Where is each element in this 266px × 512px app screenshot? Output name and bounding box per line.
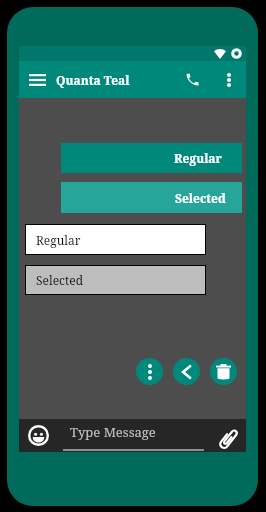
button[interactable]: More bbox=[136, 358, 163, 385]
staticText: Type Message bbox=[70, 423, 156, 441]
staticText: Selected bbox=[36, 272, 84, 288]
staticText: Regular bbox=[36, 232, 81, 248]
button[interactable]: Type Message bbox=[62, 419, 211, 452]
button[interactable]: Call bbox=[174, 61, 211, 98]
button[interactable]: Selected bbox=[26, 266, 205, 294]
staticText: Selected bbox=[175, 190, 226, 206]
button[interactable]: More options bbox=[211, 62, 246, 97]
button[interactable]: Attach bbox=[216, 426, 240, 450]
button[interactable]: Menu bbox=[19, 61, 56, 98]
staticText: Quanta Teal bbox=[56, 72, 130, 88]
staticText: Regular bbox=[174, 150, 222, 166]
button[interactable]: Selected bbox=[61, 182, 242, 213]
button[interactable]: Back bbox=[173, 358, 200, 385]
button[interactable]: Regular bbox=[26, 225, 205, 254]
button[interactable]: Regular bbox=[61, 143, 242, 173]
button[interactable]: Emoji bbox=[28, 425, 49, 446]
button[interactable]: Delete bbox=[210, 358, 237, 385]
